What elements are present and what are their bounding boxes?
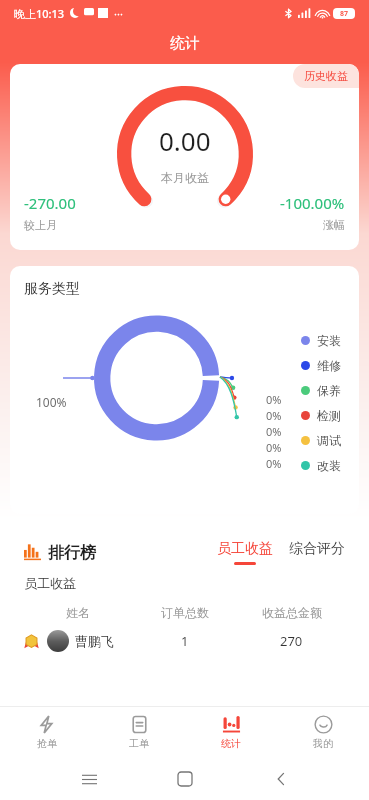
staticText: 0.00	[159, 123, 211, 158]
staticText: 270	[280, 632, 303, 650]
staticText: 0%	[266, 392, 282, 407]
staticText: 曹鹏飞	[75, 633, 114, 649]
staticText: 统计	[221, 737, 241, 750]
button[interactable]: 检测	[301, 408, 341, 423]
staticText: 改装	[317, 458, 341, 473]
button[interactable]: 历史收益	[293, 64, 359, 88]
button[interactable]: 改装	[301, 458, 341, 473]
button[interactable]: 曹鹏飞	[10, 630, 359, 652]
staticText: 安装	[317, 333, 341, 348]
staticText: 订单总数	[161, 605, 209, 620]
staticText: 较上月	[24, 218, 57, 232]
button[interactable]: 我的	[277, 706, 369, 758]
staticText: 统计	[170, 34, 200, 53]
staticText: 我的	[313, 737, 333, 750]
staticText: 0%	[266, 456, 282, 471]
staticText: 工单	[129, 737, 149, 750]
staticText: -100.00%	[280, 193, 345, 213]
button[interactable]: 保养	[301, 383, 341, 398]
staticText: 抢单	[37, 737, 57, 750]
staticText: 0%	[266, 424, 282, 439]
button[interactable]: 综合评分	[289, 540, 345, 565]
staticText: -270.00	[24, 193, 76, 213]
button[interactable]: 抢单	[0, 706, 93, 758]
staticText: 检测	[317, 408, 341, 423]
button[interactable]: 调试	[301, 433, 341, 448]
staticText: 综合评分	[289, 540, 345, 558]
staticText: 姓名	[66, 605, 90, 620]
staticText: 0%	[266, 408, 282, 423]
button[interactable]: 维修	[301, 358, 341, 373]
staticText: 87	[340, 9, 349, 19]
staticText: 员工收益	[217, 540, 273, 558]
staticText: 员工收益	[24, 575, 76, 591]
staticText: 100%	[36, 394, 67, 410]
staticText: 1	[181, 632, 189, 650]
staticText: 收益总金额	[262, 605, 322, 620]
staticText: 调试	[317, 433, 341, 448]
button[interactable]: 员工收益	[217, 540, 273, 565]
staticText: 0%	[266, 440, 282, 455]
other: Recents	[82, 772, 97, 787]
staticText: 晚上10:13	[14, 6, 65, 21]
staticText: 排行榜	[48, 543, 96, 563]
button[interactable]: 工单	[93, 706, 185, 758]
other: Back	[274, 772, 288, 786]
staticText: 本月收益	[161, 170, 209, 185]
other: Home	[178, 772, 192, 786]
staticText: ···	[114, 6, 123, 21]
staticText: 维修	[317, 358, 341, 373]
staticText: 服务类型	[24, 280, 80, 298]
button[interactable]: 安装	[301, 333, 341, 348]
staticText: 历史收益	[304, 69, 348, 83]
button[interactable]: 统计	[185, 706, 277, 758]
staticText: 涨幅	[323, 218, 345, 232]
staticText: 保养	[317, 383, 341, 398]
